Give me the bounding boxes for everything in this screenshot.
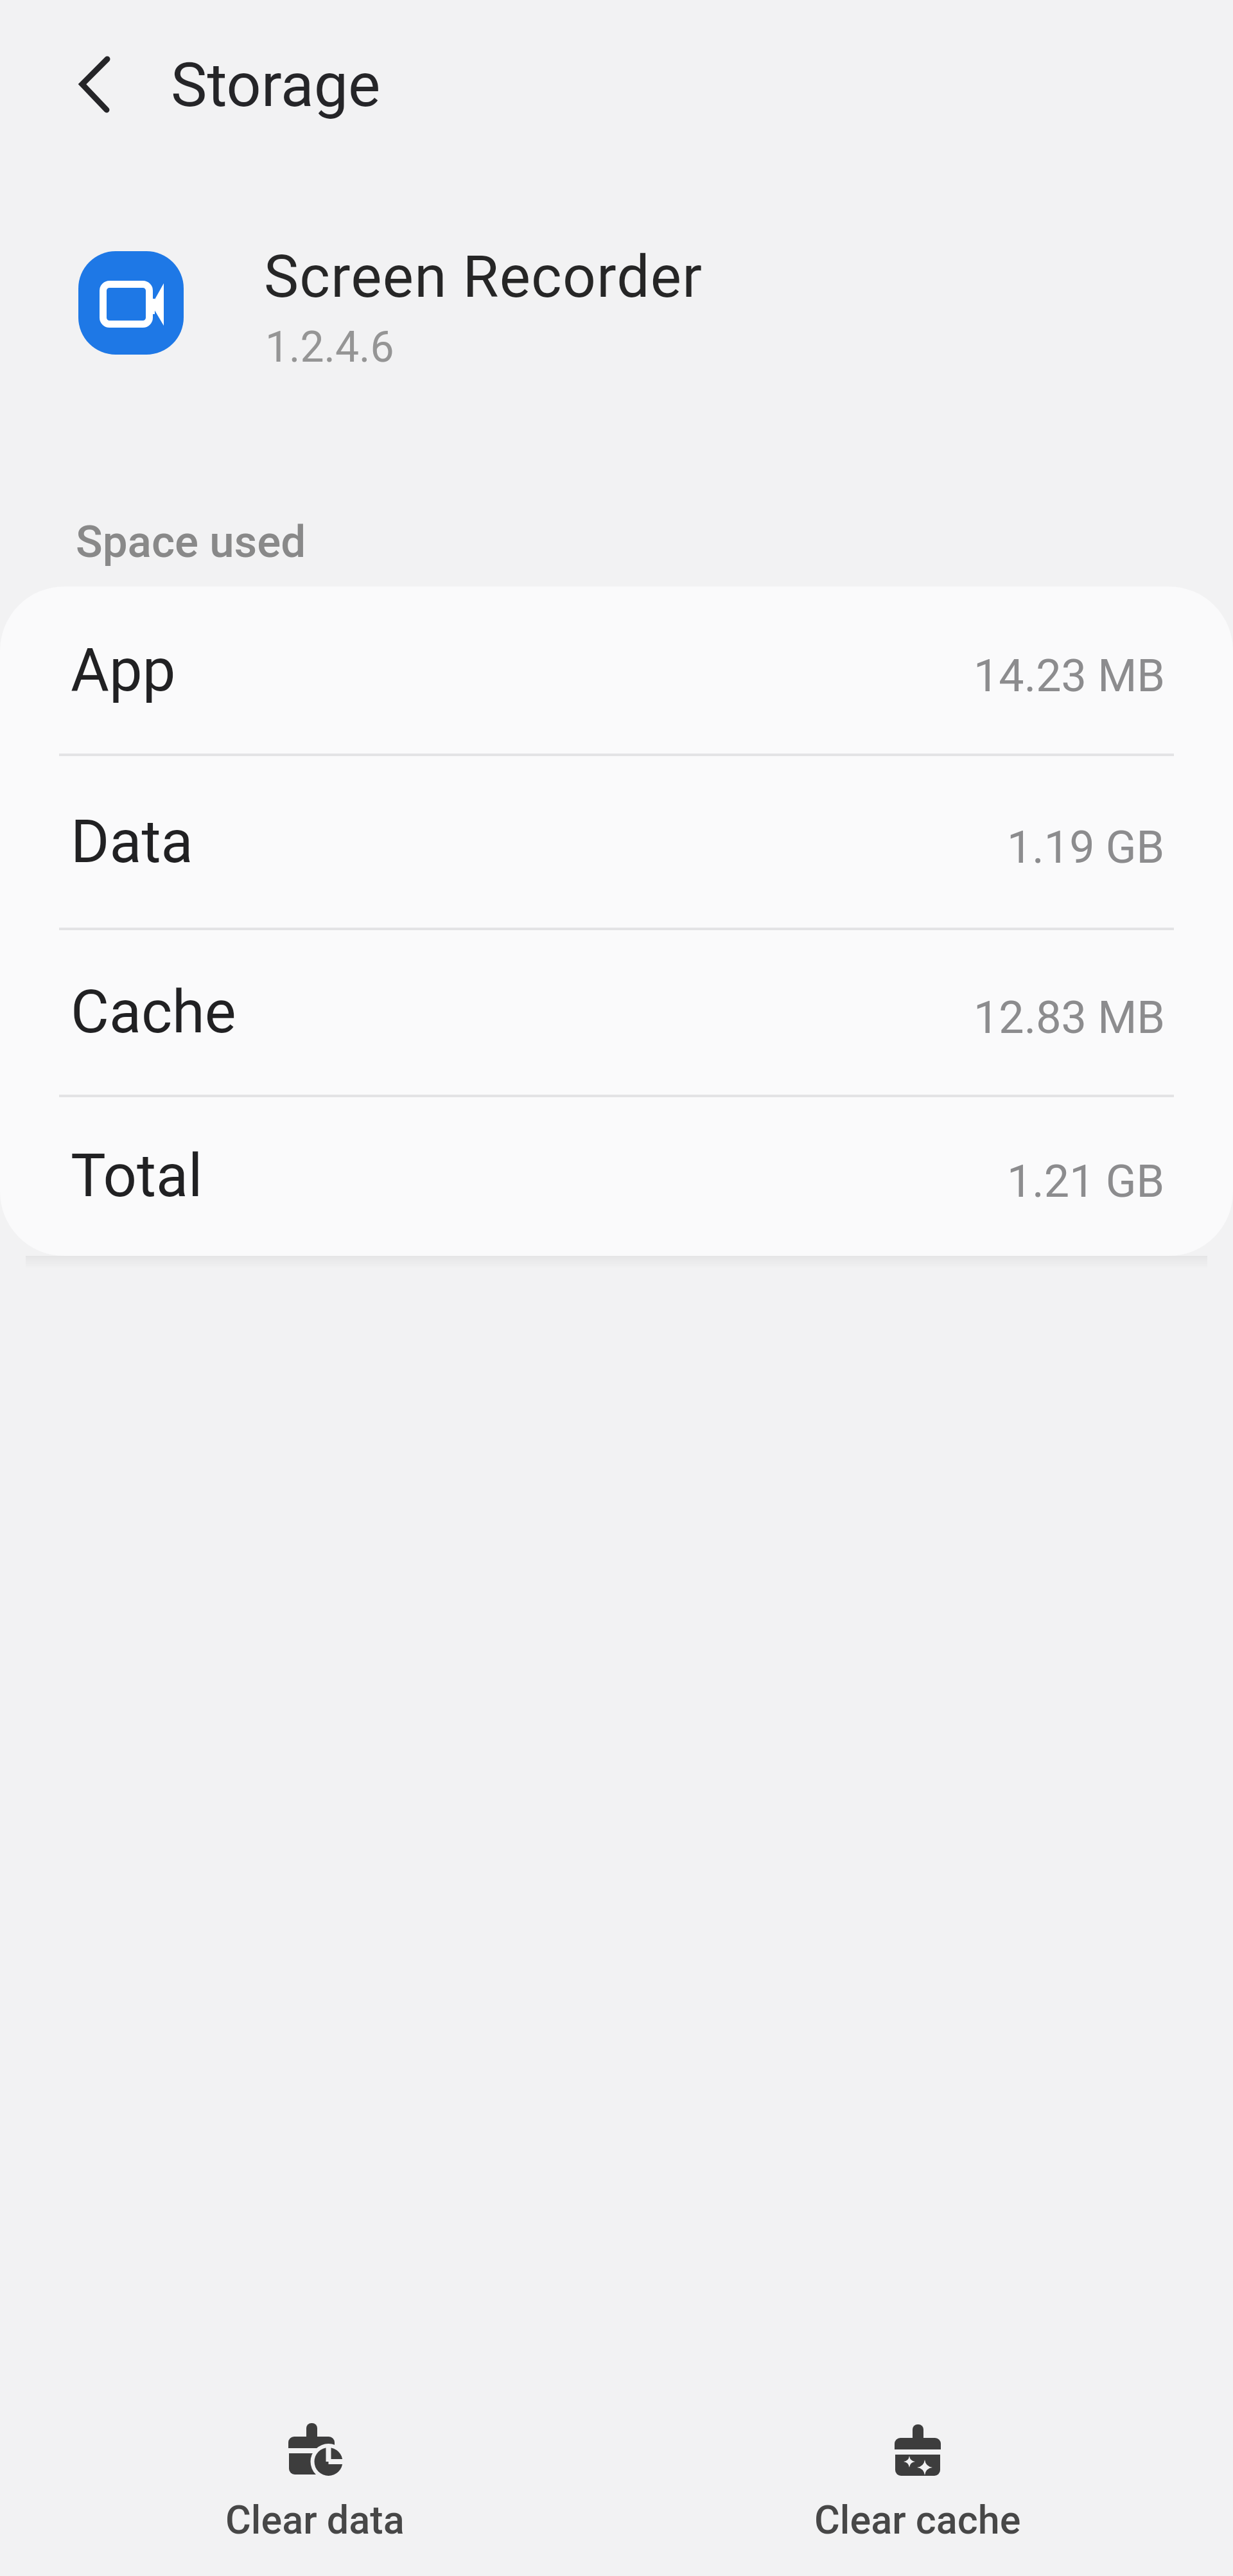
button[interactable] [51, 39, 141, 128]
button[interactable]: Clear cache [783, 2390, 1053, 2557]
staticText: 1.2.4.6 [265, 322, 394, 372]
staticText: 14.23 MB [974, 649, 1165, 702]
staticText: Data [71, 807, 193, 877]
staticText: Screen Recorder [264, 243, 703, 301]
staticText: App [71, 636, 176, 705]
staticText: 1.19 GB [1007, 821, 1165, 874]
button[interactable]: Clear data [180, 2390, 450, 2557]
staticText: Clear cache [814, 2497, 1021, 2543]
staticText: Storage [171, 49, 381, 121]
staticText: Total [71, 1142, 203, 1211]
staticText: Space used [76, 516, 306, 568]
staticText: 1.21 GB [1007, 1155, 1165, 1208]
staticText: Cache [71, 978, 236, 1047]
staticText: Clear data [225, 2497, 405, 2543]
staticText: 12.83 MB [974, 991, 1165, 1044]
